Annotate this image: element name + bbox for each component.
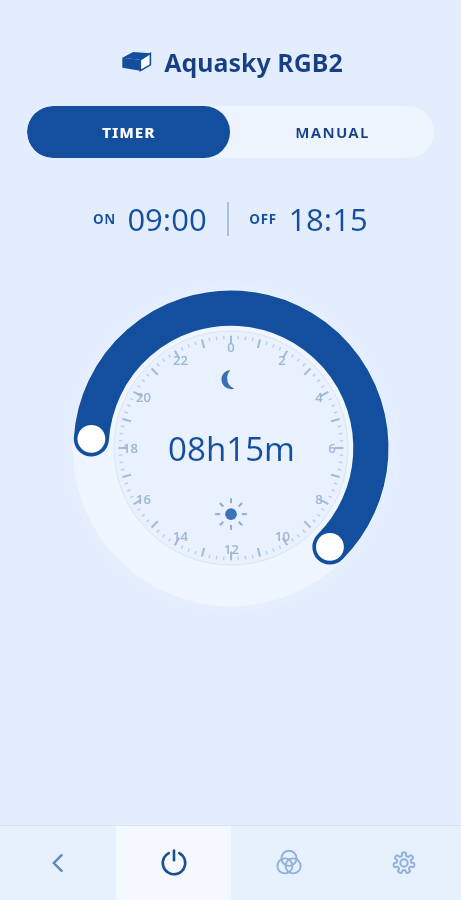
button[interactable]: Settings [346,826,461,900]
staticText: 20 [136,388,151,406]
staticText: 8 [315,490,323,508]
staticText: 22 [173,351,188,369]
button[interactable]: Power [116,826,231,900]
staticText: MANUAL [295,122,370,142]
button[interactable]: TIMER [27,106,230,158]
staticText: 2 [278,351,286,369]
button[interactable]: ON [93,198,207,240]
staticText: 18:15 [288,198,368,240]
staticText: OFF [249,210,277,228]
staticText: Aquasky RGB2 [164,45,343,79]
staticText: TIMER [102,122,156,142]
staticText: 09:00 [127,198,207,240]
staticText: 6 [328,439,336,457]
staticText: 12 [224,540,239,558]
staticText: 08h15m [168,426,295,471]
staticText: 18 [123,439,138,457]
button[interactable]: Back [0,826,116,900]
staticText: 4 [315,388,323,406]
button[interactable]: OFF [249,198,368,240]
staticText: 16 [136,490,151,508]
staticText: 10 [275,527,290,545]
button[interactable]: MANUAL [230,106,434,158]
button[interactable]: Colours [231,826,346,900]
staticText: 14 [173,527,188,545]
button[interactable]: Timer dial, on 09:00 off 18:15, 08h15m [55,272,407,624]
staticText: 0 [227,338,235,356]
staticText: ON [93,210,116,228]
